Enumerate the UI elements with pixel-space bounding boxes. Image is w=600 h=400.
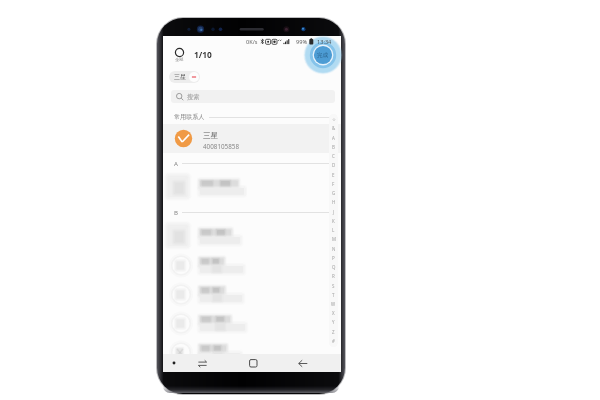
button[interactable]: Back [291, 354, 315, 372]
button[interactable] [163, 251, 341, 280]
staticText: 三星 [174, 73, 186, 81]
staticText: # [332, 338, 335, 344]
staticText: K [332, 218, 335, 224]
staticText: A [332, 135, 335, 141]
staticText: J [333, 209, 335, 215]
button[interactable]: 完成 [301, 33, 345, 77]
staticText: N [332, 246, 336, 252]
staticText: R [332, 273, 335, 279]
staticText: T [332, 292, 335, 298]
button[interactable]: Hide keyboard [167, 354, 181, 372]
staticText: D [332, 162, 336, 168]
staticText: 4008105858 [203, 142, 240, 151]
staticText: X [332, 310, 335, 316]
staticText: Z [332, 329, 335, 335]
button[interactable]: 三星 [169, 71, 200, 83]
staticText: 全部 [175, 57, 184, 62]
button[interactable]: 搜索 [171, 90, 335, 103]
staticText: 1/10 [194, 49, 212, 60]
staticText: A [174, 159, 178, 167]
staticText: 常用联系人 [174, 113, 205, 121]
button[interactable] [163, 173, 341, 202]
staticText: H [332, 199, 336, 205]
button[interactable] [163, 222, 341, 251]
staticText: G [332, 190, 336, 196]
staticText: C [332, 153, 335, 159]
button[interactable] [163, 280, 341, 309]
button[interactable]: Recents [191, 354, 213, 372]
staticText: 搜索 [187, 93, 200, 101]
staticText: 13:34 [317, 38, 332, 46]
staticText: E [332, 172, 335, 178]
staticText: 0K/s [246, 38, 258, 46]
button[interactable]: 全部 [174, 48, 185, 62]
staticText: W [331, 301, 336, 307]
staticText: B [174, 208, 178, 216]
staticText: Y [332, 319, 335, 325]
button[interactable]: Index [329, 114, 338, 347]
button[interactable] [163, 338, 341, 367]
staticText: L [332, 227, 335, 233]
staticText: F [332, 181, 335, 187]
button[interactable]: Home [241, 354, 265, 372]
button[interactable] [163, 309, 341, 338]
staticText: S [332, 283, 335, 289]
staticText: ☆ [332, 117, 336, 122]
button[interactable]: 三星 [163, 124, 341, 153]
staticText: Q [332, 264, 336, 270]
staticText: P [332, 255, 335, 261]
staticText: 完成 [317, 52, 329, 59]
staticText: M [332, 236, 336, 242]
staticText: 99% [296, 38, 308, 46]
staticText: 三星 [203, 131, 219, 141]
staticText: B [332, 144, 335, 150]
staticText: & [332, 125, 336, 131]
